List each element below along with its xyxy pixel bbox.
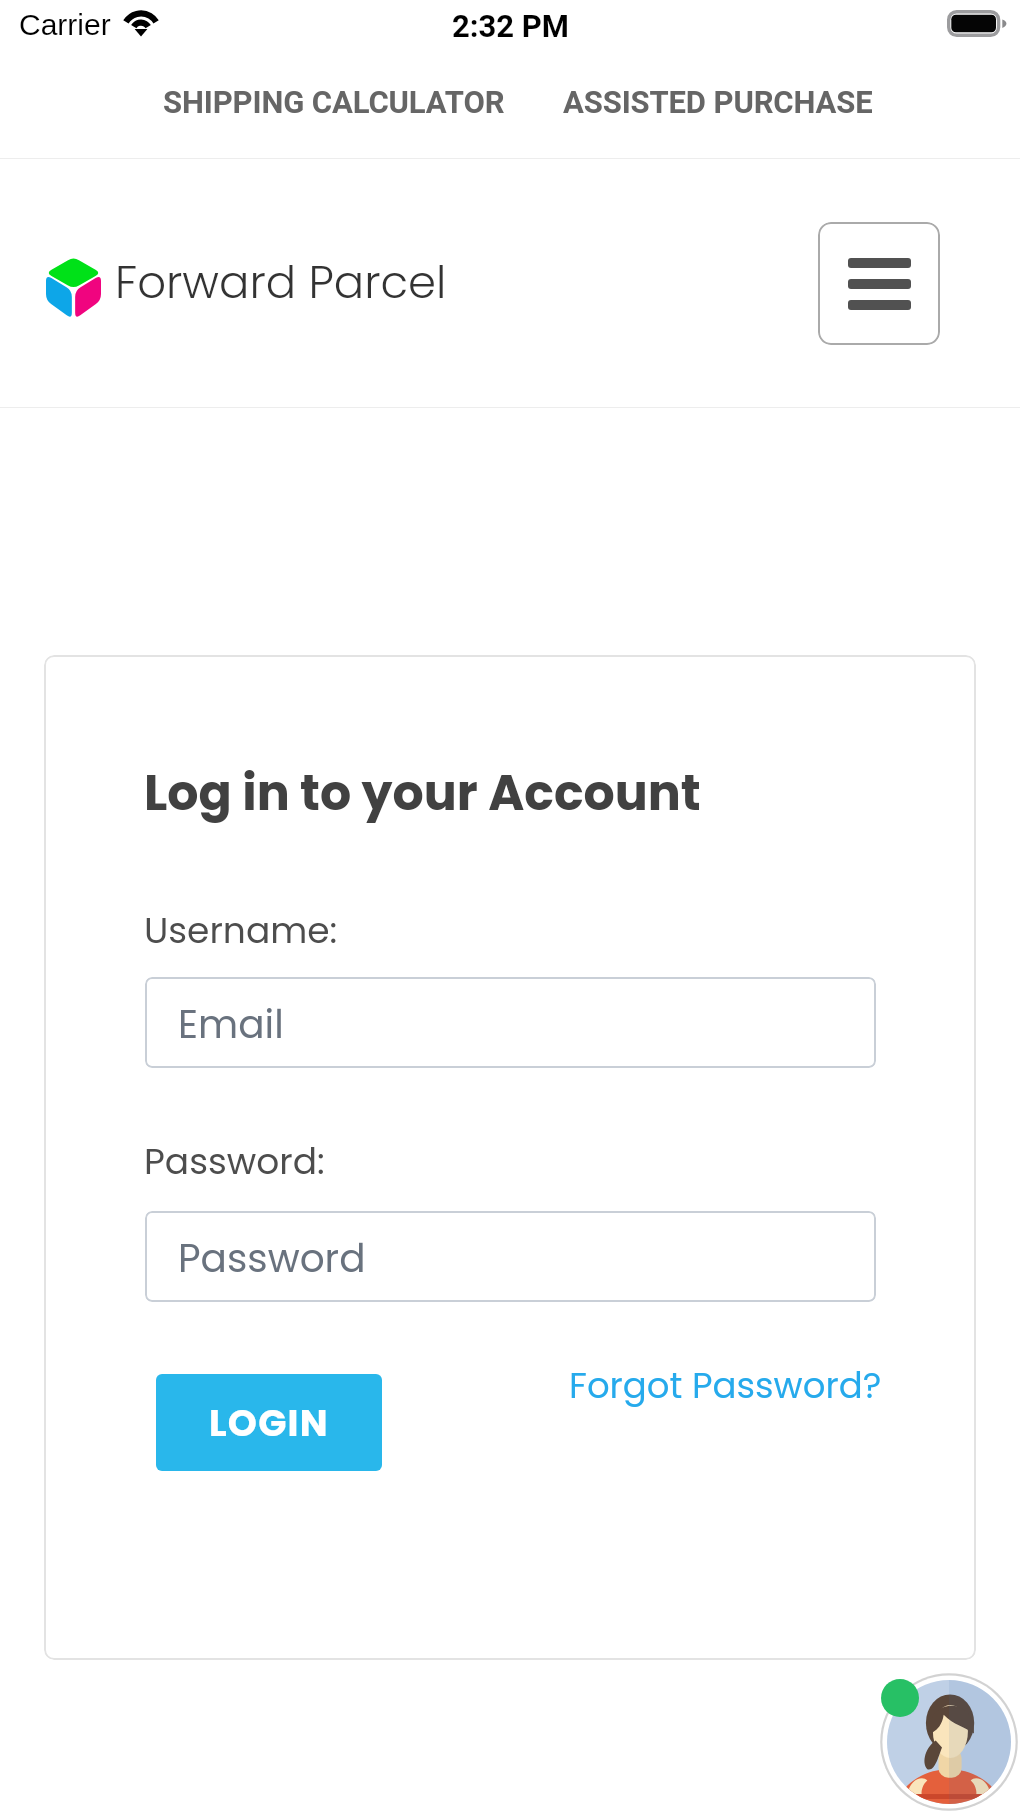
staticText: Password xyxy=(178,1231,366,1286)
button[interactable]: Password xyxy=(145,1211,876,1302)
staticText: Username: xyxy=(144,905,338,955)
button[interactable]: Chat support xyxy=(879,1672,1019,1812)
button[interactable]: Menu xyxy=(818,222,940,345)
staticText: SHIPPING CALCULATOR xyxy=(163,84,505,120)
staticText: LOGIN xyxy=(209,1397,329,1449)
staticText: Carrier xyxy=(19,8,111,42)
staticText: Email xyxy=(178,997,284,1052)
button[interactable]: LOGIN xyxy=(156,1374,382,1471)
button[interactable]: Forward Parcel xyxy=(46,252,445,315)
staticText: Log in to your Account xyxy=(144,759,701,828)
staticText: 2:32 PM xyxy=(452,8,569,44)
staticText: Forward Parcel xyxy=(115,251,447,314)
staticText: Password: xyxy=(144,1136,325,1186)
button[interactable]: SHIPPING CALCULATOR xyxy=(163,84,505,120)
button[interactable]: Email xyxy=(145,977,876,1068)
button[interactable]: Forgot Password? xyxy=(569,1361,882,1411)
button[interactable]: ASSISTED PURCHASE xyxy=(563,84,873,120)
staticText: Forgot Password? xyxy=(569,1361,882,1411)
staticText: ASSISTED PURCHASE xyxy=(563,84,873,120)
